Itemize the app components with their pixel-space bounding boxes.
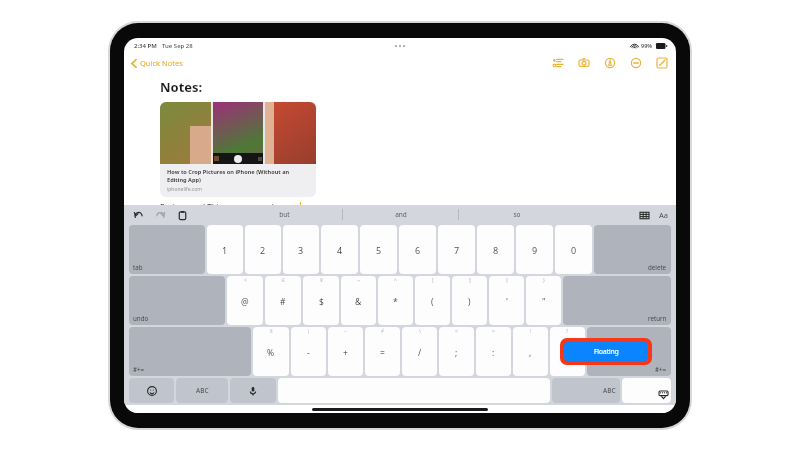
staticText: -	[307, 347, 310, 359]
staticText: /	[418, 347, 422, 359]
button[interactable]: ~	[328, 327, 363, 376]
button[interactable]: Dictation	[230, 378, 276, 403]
button[interactable]: Formatting	[550, 55, 566, 71]
button[interactable]: Hide keyboard	[622, 378, 671, 403]
button[interactable]: 7	[438, 225, 475, 274]
staticText: @	[241, 296, 249, 308]
button[interactable]: 3	[283, 225, 319, 274]
staticText: %	[267, 347, 275, 359]
staticText: ~	[344, 328, 347, 335]
button[interactable]: Compose	[654, 55, 670, 71]
staticText: 7	[454, 244, 460, 256]
staticText: $	[319, 296, 324, 308]
button[interactable]: <	[439, 327, 474, 376]
button[interactable]: Quick Notes	[129, 56, 185, 70]
staticText: +	[343, 347, 348, 359]
button[interactable]: Emoji	[129, 378, 174, 403]
staticText: ]	[469, 277, 471, 284]
button[interactable]: [	[415, 276, 450, 325]
button[interactable]: ABC	[176, 378, 228, 403]
button[interactable]: !	[513, 327, 548, 376]
staticText: so	[513, 210, 521, 219]
button[interactable]: Camera	[576, 55, 592, 71]
button[interactable]: <	[227, 276, 263, 325]
button[interactable]: £	[265, 276, 301, 325]
button[interactable]: so	[459, 205, 574, 224]
button[interactable]: ?	[550, 327, 585, 376]
staticText: )	[468, 296, 471, 308]
button[interactable]: Paste	[175, 208, 189, 222]
staticText: iphonelife.com	[167, 186, 202, 193]
button[interactable]: 4	[321, 225, 358, 274]
staticText: *	[393, 296, 398, 308]
button[interactable]: tab	[129, 225, 205, 274]
button[interactable]: undo	[129, 276, 225, 325]
staticText: |	[307, 328, 310, 335]
staticText: }	[543, 277, 545, 284]
staticText: >	[492, 328, 495, 335]
button[interactable]: ¥	[303, 276, 339, 325]
button[interactable]: More	[628, 55, 644, 71]
button[interactable]: 5	[360, 225, 397, 274]
staticText: ^	[394, 277, 397, 284]
staticText: <	[455, 328, 458, 335]
button[interactable]: {	[489, 276, 524, 325]
button[interactable]: #+=	[587, 327, 671, 376]
button[interactable]: 9	[516, 225, 553, 274]
staticText: 99%	[641, 42, 653, 49]
staticText: \	[419, 328, 421, 335]
staticText: How to Crop Pictures on iPhone (Without …	[167, 168, 309, 184]
button[interactable]: }	[526, 276, 561, 325]
staticText: Easiest way! This saves several steps.	[160, 202, 299, 205]
button[interactable]: ≠	[365, 327, 400, 376]
button[interactable]: |	[291, 327, 326, 376]
button[interactable]: 2	[245, 225, 281, 274]
staticText: 9	[532, 244, 538, 256]
staticText: 1	[222, 244, 228, 256]
button[interactable]: ABC	[552, 378, 620, 403]
staticText: Tue Sep 28	[162, 42, 193, 50]
button[interactable]: but	[226, 205, 342, 224]
button[interactable]: Markup	[602, 55, 618, 71]
button[interactable]: ¬	[341, 276, 376, 325]
button[interactable]: Aa	[658, 209, 669, 221]
staticText: =	[380, 347, 385, 359]
button[interactable]: Undo	[131, 208, 145, 222]
button[interactable]: #+=	[129, 327, 251, 376]
button[interactable]: return	[563, 276, 671, 325]
button[interactable]: delete	[594, 225, 671, 274]
staticText: 0	[571, 244, 577, 256]
staticText: §	[270, 328, 273, 335]
button[interactable]: >	[476, 327, 511, 376]
staticText: ABC	[196, 386, 209, 395]
staticText: (	[431, 296, 434, 308]
button[interactable]: ]	[452, 276, 487, 325]
staticText: ?	[566, 328, 569, 335]
button[interactable]: Floating	[564, 342, 648, 361]
button[interactable]: Redo	[153, 208, 167, 222]
staticText: £	[282, 277, 285, 284]
button[interactable]: \	[402, 327, 437, 376]
staticText: !	[530, 328, 532, 335]
staticText: return	[648, 314, 667, 322]
staticText: #+=	[655, 365, 667, 373]
staticText: 8	[493, 244, 499, 256]
staticText: Aa	[659, 210, 668, 220]
staticText: ≠	[381, 328, 384, 335]
button[interactable]: How to Crop Pictures on iPhone (Without …	[160, 102, 316, 197]
button[interactable]: and	[343, 205, 458, 224]
button[interactable]: Insert table	[637, 208, 651, 222]
button[interactable]: 6	[399, 225, 436, 274]
staticText: ABC	[603, 386, 616, 395]
staticText: ,	[529, 347, 532, 359]
button[interactable]: §	[253, 327, 289, 376]
staticText: and	[395, 210, 407, 219]
staticText: tab	[133, 263, 143, 271]
button[interactable]: 0	[555, 225, 592, 274]
button[interactable]: ^	[378, 276, 413, 325]
button[interactable]: 1	[207, 225, 243, 274]
button[interactable]: 8	[477, 225, 514, 274]
staticText: &	[355, 296, 362, 308]
